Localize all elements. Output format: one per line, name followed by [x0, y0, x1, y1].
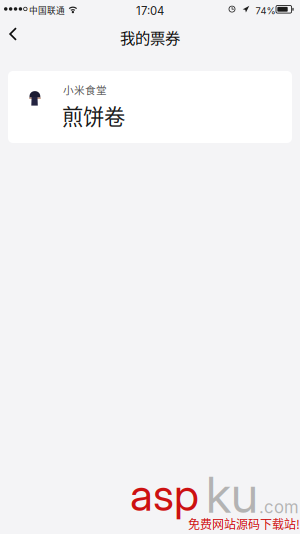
staticText: 74% — [255, 5, 275, 16]
staticText: 小米食堂 — [63, 82, 107, 97]
staticText: 17:04 — [136, 4, 164, 18]
button[interactable]: Back — [0, 20, 34, 56]
staticText: 中国联通 — [29, 4, 65, 16]
staticText: asp — [130, 468, 199, 521]
staticText: 煎饼卷 — [62, 100, 125, 131]
staticText: 免费网站源码下载站! — [188, 515, 300, 532]
staticText: 我的票券 — [120, 26, 180, 48]
button[interactable]: 小米食堂 — [8, 71, 292, 143]
staticText: ku — [206, 465, 258, 525]
staticText: .com — [259, 497, 299, 517]
